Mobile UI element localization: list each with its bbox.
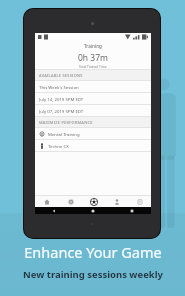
button[interactable]: This Week's Session — [35, 81, 151, 92]
staticText: Training — [84, 43, 102, 49]
staticText: July 07, 2019 5PM EDT — [39, 108, 84, 114]
button[interactable]: Recents — [112, 207, 151, 214]
button[interactable]: Activity — [59, 196, 82, 207]
button[interactable]: Profile — [105, 196, 128, 207]
staticText: Total Trained Time — [79, 65, 107, 69]
button[interactable]: Home — [35, 196, 59, 207]
staticText: MAXIMIZE PERFORMANCE — [39, 120, 93, 125]
button[interactable]: Mental Training — [35, 128, 151, 139]
staticText: 0h 37m — [78, 52, 108, 64]
staticText: AVAILABLE SESSIONS — [39, 73, 83, 78]
button[interactable]: July 14, 2019 5PM EDT — [35, 93, 151, 104]
staticText: Enhance Your Game — [24, 242, 162, 262]
button[interactable]: Techne CX — [35, 140, 151, 151]
staticText: Mental Training — [48, 131, 80, 137]
staticText: July 14, 2019 5PM EDT — [39, 96, 84, 102]
staticText: New training sessions weekly — [23, 268, 163, 281]
button[interactable]: More — [128, 196, 151, 207]
button[interactable]: Training — [82, 196, 105, 207]
staticText: This Week's Session — [39, 84, 79, 90]
button[interactable]: Home — [73, 207, 112, 214]
button[interactable]: Back — [35, 207, 73, 214]
button[interactable]: July 07, 2019 5PM EDT — [35, 105, 151, 116]
staticText: Techne CX — [48, 143, 69, 149]
